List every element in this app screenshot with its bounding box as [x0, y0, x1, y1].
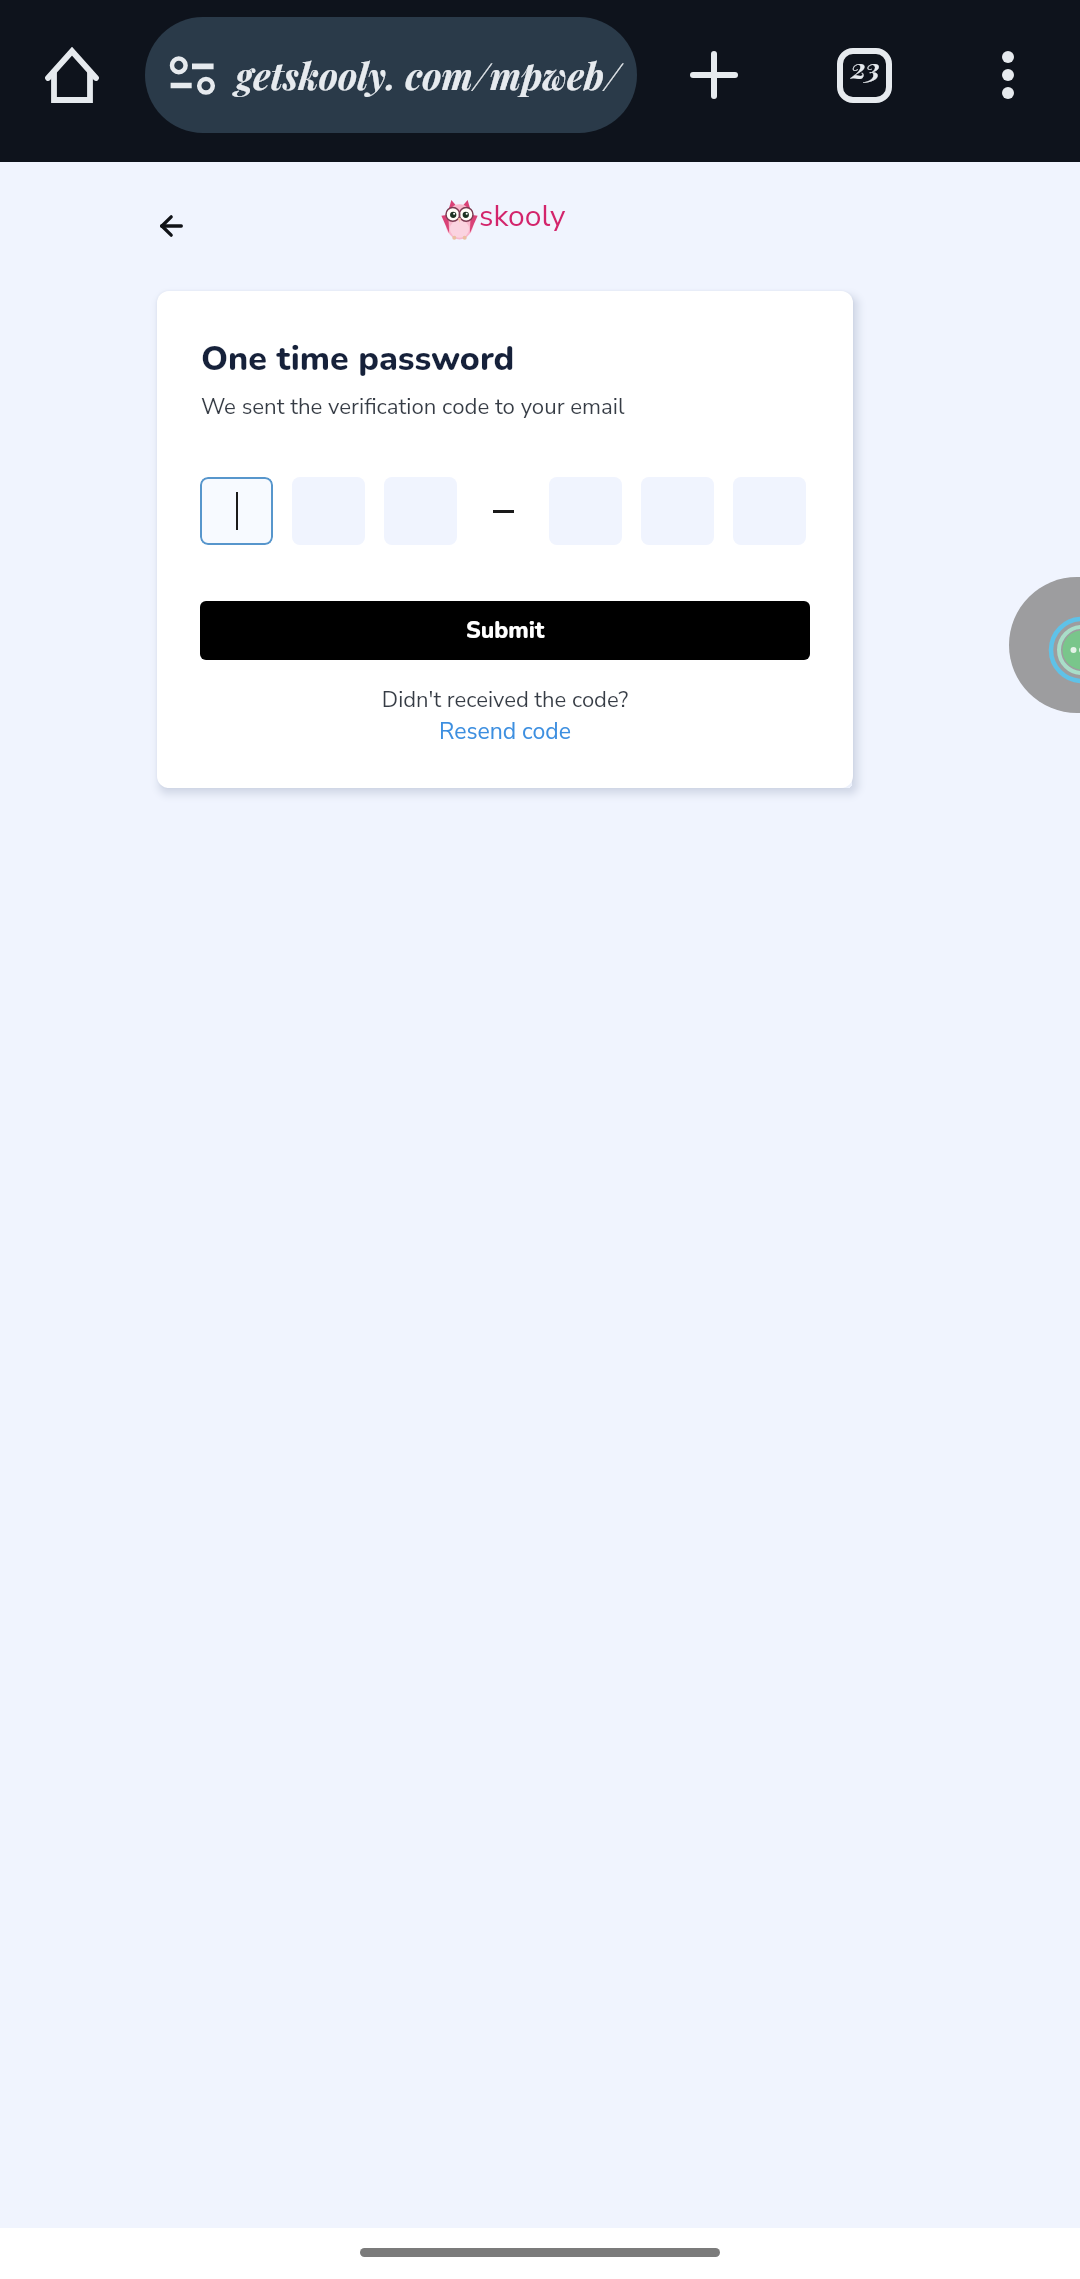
- staticText: One time password: [201, 336, 515, 382]
- button[interactable]: Chat: [1009, 577, 1080, 713]
- button[interactable]: Submit: [200, 601, 810, 660]
- button[interactable]: Resend code: [200, 714, 810, 748]
- button[interactable]: More options: [960, 27, 1056, 123]
- staticText: 23: [851, 49, 880, 86]
- button[interactable]: getskooly. com/mpweb/: [145, 17, 637, 133]
- button[interactable]: Home: [24, 27, 120, 123]
- button[interactable]: Tabs: [816, 27, 912, 123]
- button[interactable]: Back: [136, 191, 206, 261]
- button[interactable]: New tab: [666, 27, 762, 123]
- staticText: We sent the verification code to your em…: [201, 392, 625, 422]
- staticText: skooly: [479, 196, 566, 237]
- staticText: Resend code: [439, 716, 571, 747]
- staticText: Didn't received the code?: [200, 685, 810, 715]
- staticText: getskooly. com/mpweb/: [236, 51, 621, 100]
- button[interactable]: [200, 477, 273, 545]
- staticText: Submit: [466, 615, 545, 646]
